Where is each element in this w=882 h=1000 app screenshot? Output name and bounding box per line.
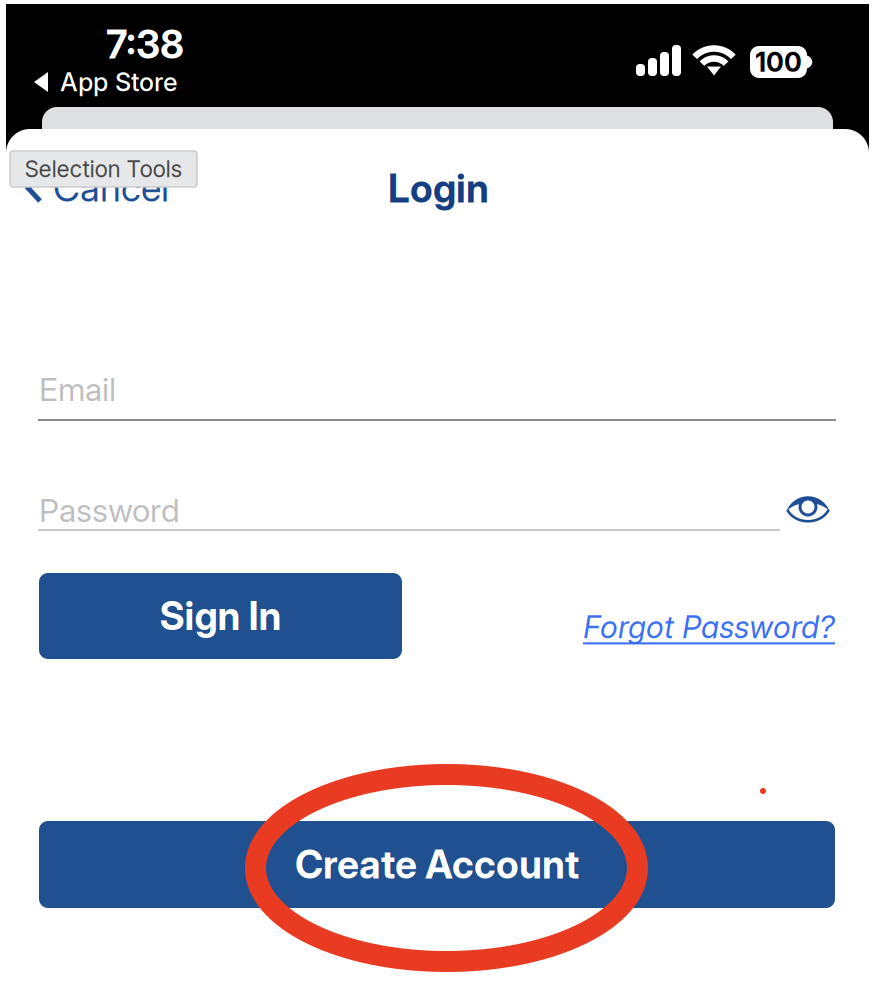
staticText: 7:38 [106,21,184,68]
staticText: Email [39,370,116,409]
button[interactable]: Back to App Store [34,63,186,101]
staticText: Create Account [295,841,579,888]
staticText: Password [39,491,180,530]
button[interactable]: Forgot Password? [583,604,853,650]
staticText: 100 [755,46,802,78]
staticText: App Store [60,67,178,97]
button[interactable]: Cancel [25,162,183,214]
staticText: Cancel [53,165,169,211]
staticText: Sign In [159,593,281,639]
button[interactable]: Create Account [39,821,835,908]
staticText: Login [388,165,489,212]
button[interactable]: Sign In [39,573,402,659]
button[interactable]: Show password [785,494,831,522]
staticText: Forgot Password? [583,608,835,645]
staticText: Selection Tools [24,155,182,183]
